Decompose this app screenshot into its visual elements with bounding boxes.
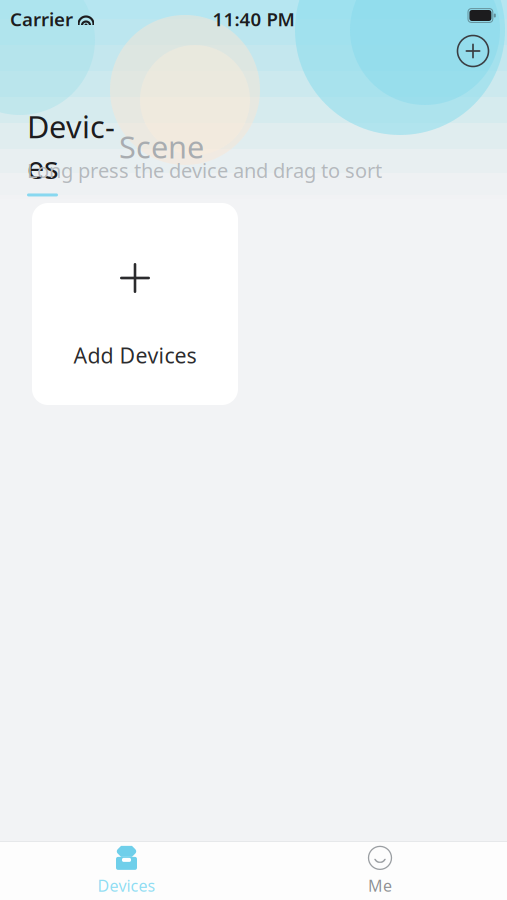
staticText: Devices [97, 875, 155, 896]
staticText: Scene [119, 126, 204, 167]
button[interactable]: Devices [0, 842, 253, 900]
staticText: Long press the device and drag to sort [27, 157, 382, 184]
staticText: Carrier [10, 7, 73, 31]
button[interactable]: Scene [119, 126, 211, 176]
staticText: 11:40 PM [212, 7, 294, 31]
button[interactable]: Add Devices [32, 203, 238, 405]
staticText: Add Devices [73, 341, 196, 369]
button[interactable]: Add [450, 28, 496, 74]
button[interactable]: Me [253, 842, 507, 900]
staticText: Devices [27, 106, 115, 187]
button[interactable]: Devices [27, 106, 119, 196]
staticText: Me [368, 875, 392, 896]
